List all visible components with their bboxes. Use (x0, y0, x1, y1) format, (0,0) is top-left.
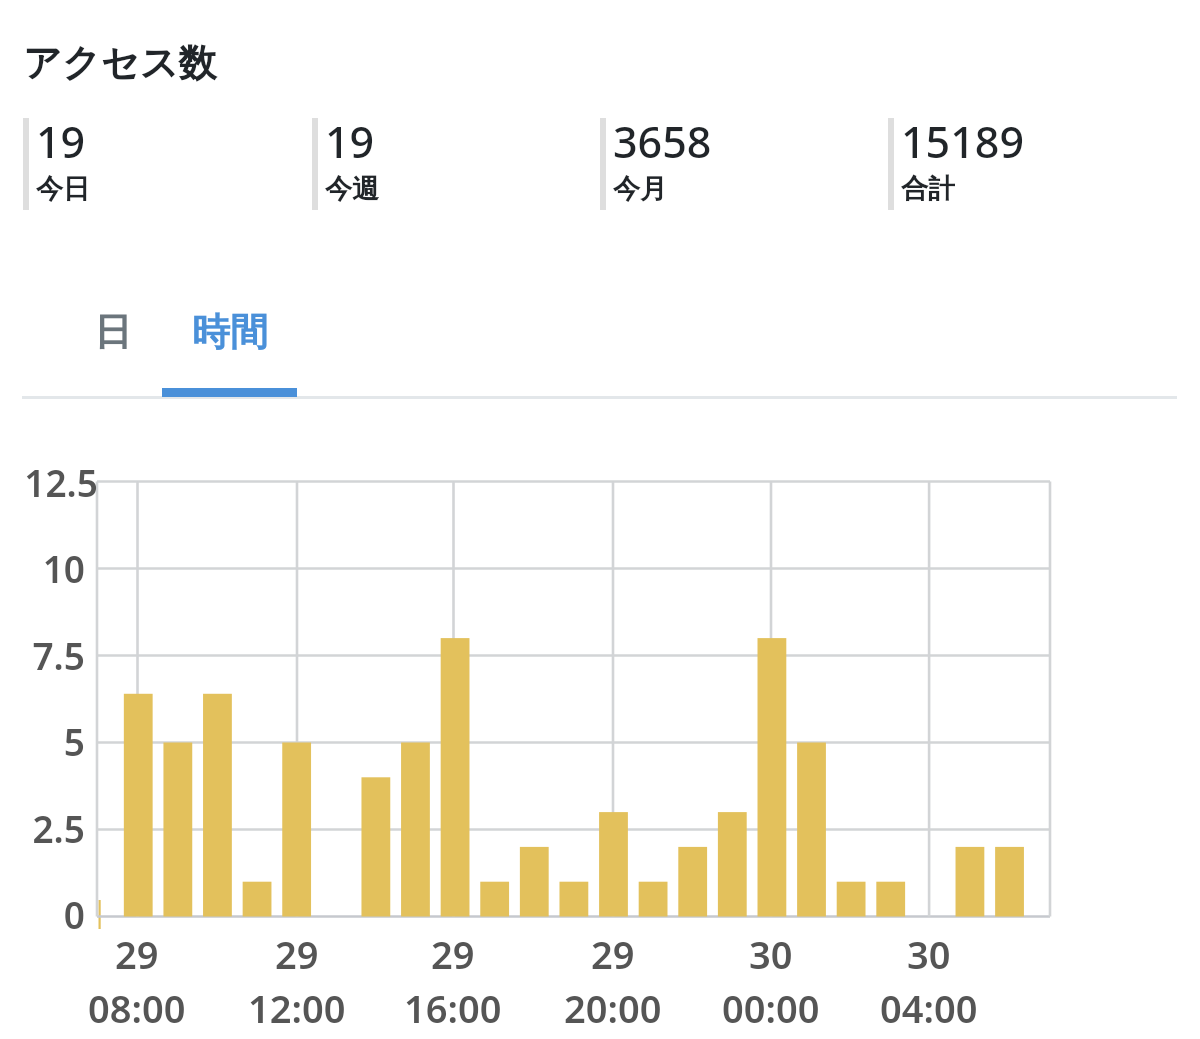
staticText: 合計 (901, 172, 955, 204)
staticText: 29 (431, 928, 475, 980)
button[interactable]: 19 (312, 118, 600, 210)
button[interactable]: 15189 (888, 118, 1176, 210)
staticText: アクセス数 (23, 39, 217, 87)
staticText: 20:00 (564, 982, 662, 1034)
button[interactable]: 3658 (600, 118, 888, 210)
staticText: 10 (0, 543, 85, 593)
staticText: 時間 (192, 308, 268, 356)
staticText: 今日 (36, 172, 90, 204)
staticText: 29 (115, 928, 159, 980)
staticText: 30 (749, 928, 793, 980)
staticText: 15189 (901, 112, 1024, 171)
staticText: 今月 (613, 172, 667, 204)
staticText: 08:00 (88, 982, 186, 1034)
staticText: 19 (325, 112, 375, 171)
staticText: 16:00 (404, 982, 502, 1034)
staticText: 12.5 (13, 457, 98, 507)
staticText: 3658 (613, 112, 712, 171)
staticText: 0 (0, 889, 85, 939)
staticText: 12:00 (248, 982, 346, 1034)
staticText: 7.5 (0, 630, 85, 680)
staticText: 29 (275, 928, 319, 980)
staticText: 5 (0, 716, 85, 766)
staticText: 日 (94, 308, 132, 356)
button[interactable]: 19 (23, 118, 312, 210)
staticText: 2.5 (0, 803, 85, 853)
staticText: 00:00 (722, 982, 820, 1034)
staticText: 30 (907, 928, 951, 980)
button[interactable]: 日 (55, 306, 171, 396)
staticText: 29 (591, 928, 635, 980)
staticText: 今週 (325, 172, 379, 204)
staticText: 04:00 (880, 982, 978, 1034)
button[interactable]: 時間 (172, 306, 287, 396)
staticText: 19 (36, 112, 86, 171)
